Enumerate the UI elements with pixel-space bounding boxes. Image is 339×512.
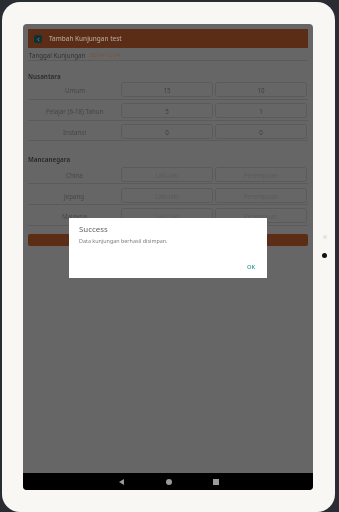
button[interactable]: 15 xyxy=(121,82,213,97)
staticText: 0 xyxy=(259,128,263,136)
staticText: 10 xyxy=(257,86,265,94)
staticText: Umum xyxy=(65,86,85,94)
staticText: OK xyxy=(247,263,256,271)
button[interactable]: OK xyxy=(240,261,262,273)
button[interactable]: Perempuan xyxy=(215,188,307,203)
staticText: Perempuan xyxy=(244,212,278,220)
staticText: Success xyxy=(79,224,108,235)
button[interactable]: Laki-laki xyxy=(121,167,213,182)
staticText: Tanggal Kunjungan xyxy=(29,51,86,59)
button[interactable]: 5 xyxy=(121,103,213,118)
staticText: SIMPAN xyxy=(157,236,180,244)
button[interactable]: Back xyxy=(34,35,42,43)
button[interactable]: 10 xyxy=(215,82,307,97)
staticText: Mancanegara xyxy=(28,155,71,163)
button[interactable]: 0 xyxy=(121,124,213,139)
staticText: Instansi xyxy=(63,128,86,136)
staticText: Nusantara xyxy=(28,72,61,80)
button[interactable]: 0 xyxy=(215,124,307,139)
staticText: Malaysia xyxy=(62,212,88,220)
staticText: Tambah Kunjungan test xyxy=(49,34,122,43)
button[interactable]: Back xyxy=(117,477,126,486)
button[interactable]: Laki-laki xyxy=(121,208,213,223)
staticText: Perempuan xyxy=(244,171,278,179)
button[interactable]: SIMPAN xyxy=(28,234,308,246)
button[interactable]: Perempuan xyxy=(215,167,307,182)
staticText: Perempuan xyxy=(244,192,278,200)
staticText: China xyxy=(66,171,83,179)
staticText: 5 xyxy=(165,107,169,115)
button[interactable]: Tanggal Kunjungan xyxy=(28,48,308,61)
button[interactable]: Laki-laki xyxy=(121,188,213,203)
staticText: Laki-laki xyxy=(155,212,179,220)
staticText: Data kunjungan berhasil disimpan. xyxy=(79,237,168,244)
button[interactable]: Perempuan xyxy=(215,208,307,223)
staticText: Pelajar (6-18) Tahun xyxy=(46,107,104,115)
staticText: Jepang xyxy=(64,192,85,200)
button[interactable]: 1 xyxy=(215,103,307,118)
staticText: 1 xyxy=(259,107,263,115)
staticText: 15 xyxy=(163,86,171,94)
staticText: 2024-12-24 xyxy=(90,51,121,59)
button[interactable]: Home xyxy=(164,477,173,486)
button[interactable]: Recent apps xyxy=(211,477,220,486)
staticText: 0 xyxy=(165,128,169,136)
